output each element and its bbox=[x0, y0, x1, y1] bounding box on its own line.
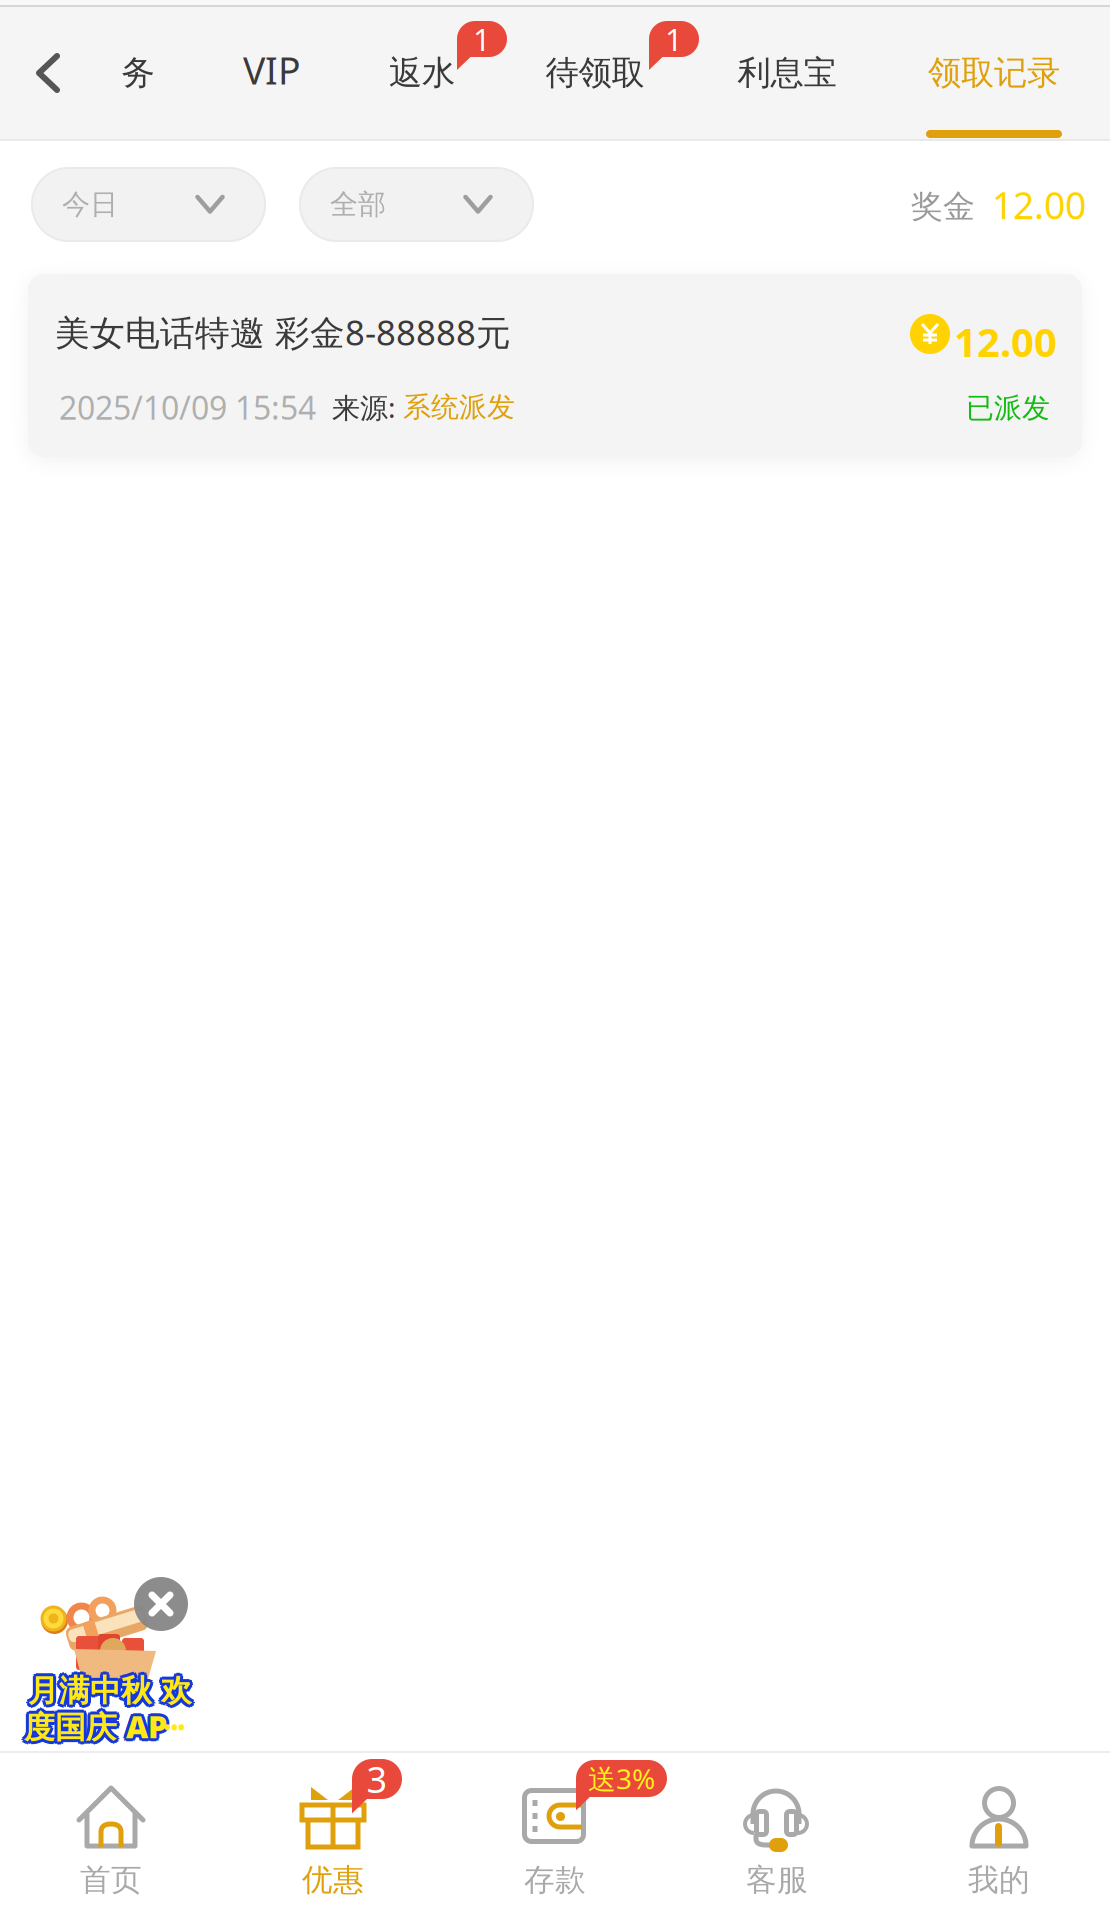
button[interactable]: 务 bbox=[82, 7, 194, 139]
staticText: 2025/10/09 15:54 bbox=[59, 386, 316, 428]
staticText: 领取记录 bbox=[928, 52, 1060, 93]
button[interactable]: VIP bbox=[208, 7, 336, 139]
staticText: 美女电话特邀 彩金8-88888元 bbox=[55, 309, 511, 355]
button[interactable]: 返水 bbox=[358, 7, 486, 139]
staticText: VIP bbox=[243, 45, 301, 95]
staticText: 度国庆 AP bbox=[21, 1706, 164, 1747]
staticText: ••• bbox=[164, 1716, 185, 1739]
staticText: 利息宝 bbox=[737, 52, 836, 93]
button[interactable]: Close promotion bbox=[134, 1577, 188, 1631]
staticText: 度国庆 AP bbox=[26, 1704, 169, 1744]
staticText: 月满中秋 欢 bbox=[26, 1670, 190, 1707]
staticText: 度国庆 AP bbox=[26, 1708, 169, 1749]
staticText: 月满中秋 欢 bbox=[25, 1672, 189, 1710]
staticText: 度国庆 AP bbox=[22, 1708, 165, 1749]
button[interactable]: 全部 bbox=[299, 167, 534, 242]
staticText: 度国庆 AP bbox=[22, 1704, 165, 1744]
staticText: 1 bbox=[473, 19, 491, 59]
button[interactable]: 领取记录 bbox=[894, 7, 1094, 139]
staticText: 存款 bbox=[524, 1861, 586, 1899]
staticText: 待领取 bbox=[545, 52, 644, 93]
staticText: 月满中秋 欢 bbox=[28, 1675, 192, 1713]
staticText: 月满中秋 欢 bbox=[30, 1670, 194, 1707]
staticText: 今日 bbox=[62, 187, 118, 222]
staticText: 已派发 bbox=[966, 391, 1050, 425]
staticText: 12.00 bbox=[992, 180, 1086, 230]
staticText: 务 bbox=[121, 52, 154, 93]
staticText: 12.00 bbox=[954, 315, 1057, 368]
staticText: 来源: bbox=[316, 389, 403, 426]
staticText: 优惠 bbox=[302, 1861, 364, 1899]
staticText: 1 bbox=[665, 19, 683, 59]
button[interactable]: 优惠 bbox=[222, 1751, 444, 1897]
staticText: 我的 bbox=[968, 1861, 1030, 1899]
button[interactable]: 今日 bbox=[31, 167, 266, 242]
staticText: 月满中秋 欢 bbox=[31, 1672, 195, 1710]
button[interactable]: 存款 bbox=[444, 1751, 666, 1897]
staticText: 月满中秋 欢 bbox=[28, 1672, 192, 1710]
button[interactable]: 美女电话特邀 彩金8-88888元 bbox=[28, 274, 1082, 457]
staticText: 月满中秋 欢 bbox=[30, 1674, 194, 1712]
staticText: 返水 bbox=[389, 52, 455, 93]
button[interactable]: 客服 bbox=[666, 1751, 888, 1897]
button[interactable]: 首页 bbox=[0, 1751, 222, 1897]
staticText: 全部 bbox=[330, 187, 386, 222]
button[interactable]: 我的 bbox=[888, 1751, 1110, 1897]
button[interactable]: 待领取 bbox=[512, 7, 678, 139]
staticText: 月满中秋 欢 bbox=[26, 1674, 190, 1712]
staticText: 3 bbox=[366, 1755, 387, 1803]
staticText: 月满中秋 欢 bbox=[28, 1669, 192, 1707]
staticText: 系统派发 bbox=[403, 390, 515, 424]
staticText: 奖金 bbox=[911, 187, 975, 226]
staticText: 度国庆 AP bbox=[27, 1706, 170, 1747]
staticText: 首页 bbox=[80, 1861, 142, 1899]
staticText: 送3% bbox=[588, 1760, 655, 1797]
staticText: 客服 bbox=[746, 1861, 808, 1899]
button[interactable]: Back bbox=[0, 5, 96, 140]
staticText: 度国庆 AP bbox=[24, 1706, 167, 1747]
staticText: 度国庆 AP bbox=[24, 1703, 167, 1744]
staticText: 度国庆 AP bbox=[24, 1709, 167, 1750]
button[interactable]: 月满中秋 欢 bbox=[14, 1592, 229, 1752]
button[interactable]: 利息宝 bbox=[704, 7, 870, 139]
